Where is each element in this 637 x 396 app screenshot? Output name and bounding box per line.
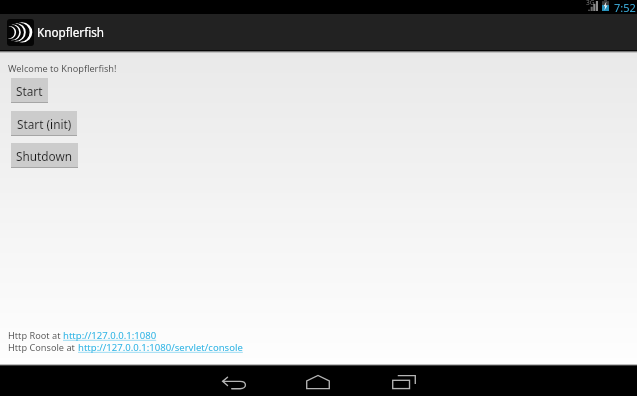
button[interactable]: Knopflerfish (4, 14, 108, 50)
button[interactable]: Home (297, 371, 339, 392)
button[interactable]: Start (init) (11, 111, 77, 136)
staticText: Start (16, 83, 43, 99)
button[interactable]: Back (213, 371, 255, 392)
staticText: 7:52 (614, 0, 636, 14)
staticText: Http Console at (8, 341, 78, 354)
button[interactable]: http://127.0.0.1:1080 (63, 329, 157, 342)
staticText: 3G (586, 0, 595, 7)
button[interactable]: http://127.0.0.1:1080/servlet/console (78, 341, 243, 354)
button[interactable]: Start (11, 78, 48, 103)
staticText: Knopflerfish (37, 24, 105, 40)
staticText: Http Root at (8, 329, 63, 342)
button[interactable]: Shutdown (11, 143, 78, 168)
staticText: Start (init) (17, 116, 72, 132)
button[interactable]: Recents (383, 371, 425, 392)
staticText: Shutdown (16, 148, 73, 164)
staticText: Welcome to Knopflerfish! (8, 62, 117, 75)
